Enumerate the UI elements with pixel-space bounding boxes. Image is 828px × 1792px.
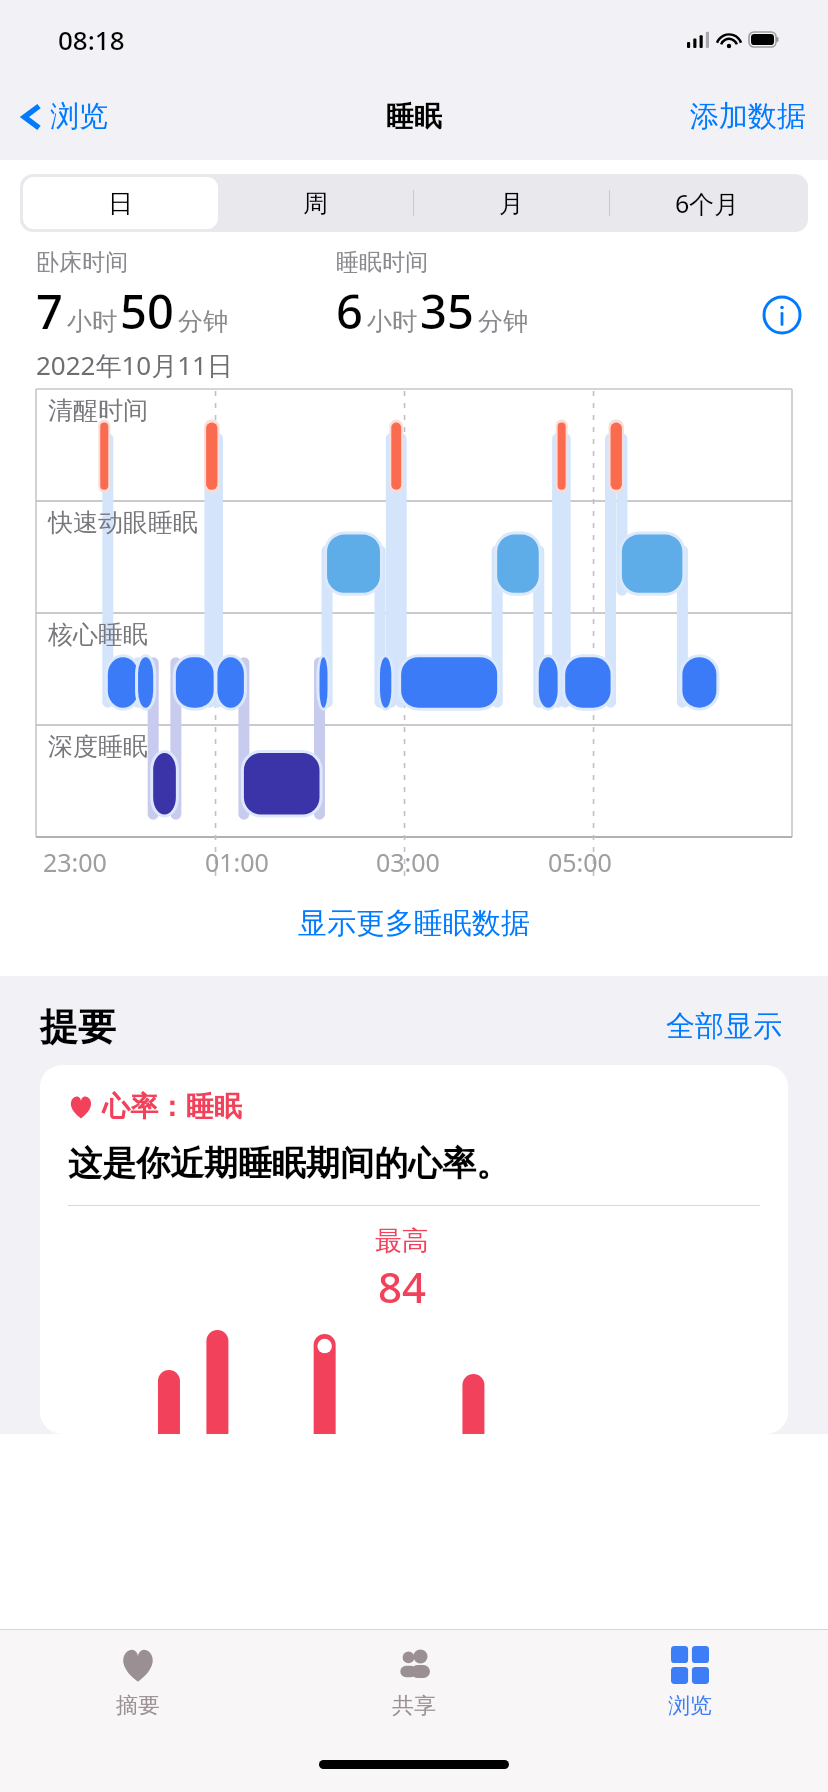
- staticText: 7: [36, 279, 63, 343]
- staticText: 睡眠时间: [336, 248, 428, 277]
- staticText: 月: [499, 188, 524, 219]
- button[interactable]: 显示更多睡眠数据: [0, 889, 828, 958]
- staticText: 6: [336, 279, 363, 343]
- button[interactable]: 月: [413, 177, 609, 229]
- staticText: 23:00: [43, 845, 107, 879]
- button[interactable]: 共享: [276, 1630, 552, 1748]
- staticText: 05:00: [548, 845, 612, 879]
- button[interactable]: 浏览: [0, 90, 118, 143]
- staticText: 浏览: [668, 1692, 712, 1720]
- staticText: 这是你近期睡眠期间的心率。: [68, 1142, 510, 1185]
- button[interactable]: 全部显示: [660, 1002, 788, 1051]
- staticText: 摘要: [116, 1692, 160, 1720]
- staticText: 周: [303, 188, 328, 219]
- staticText: 2022年10月11日: [36, 347, 233, 383]
- staticText: 清醒时间: [48, 395, 148, 426]
- staticText: 核心睡眠: [48, 619, 148, 650]
- staticText: 01:00: [205, 845, 269, 879]
- staticText: 日: [108, 188, 133, 219]
- staticText: 35: [420, 279, 474, 343]
- staticText: 84: [378, 1258, 427, 1315]
- staticText: 心率：睡眠: [102, 1089, 242, 1124]
- button[interactable]: 日: [23, 177, 218, 229]
- button[interactable]: 周: [218, 177, 413, 229]
- staticText: 08:18: [58, 22, 125, 57]
- staticText: 小时: [67, 306, 117, 337]
- staticText: 快速动眼睡眠: [48, 507, 198, 538]
- staticText: 共享: [392, 1692, 436, 1720]
- staticText: 深度睡眠: [48, 731, 148, 762]
- staticText: 小时: [367, 306, 417, 337]
- button[interactable]: 6个月: [609, 177, 805, 229]
- button[interactable]: 摘要: [0, 1630, 276, 1748]
- staticText: 全部显示: [666, 1008, 782, 1045]
- staticText: 最高: [375, 1224, 429, 1258]
- button[interactable]: 心率：睡眠: [40, 1065, 788, 1434]
- button[interactable]: 信息: [760, 293, 804, 337]
- staticText: 50: [120, 279, 174, 343]
- staticText: 6个月: [675, 186, 740, 220]
- staticText: 分钟: [178, 306, 228, 337]
- staticText: 显示更多睡眠数据: [298, 905, 530, 942]
- staticText: 卧床时间: [36, 248, 128, 277]
- staticText: 03:00: [376, 845, 440, 879]
- staticText: 分钟: [478, 306, 528, 337]
- staticText: 睡眠: [386, 99, 442, 134]
- button[interactable]: 添加数据: [678, 90, 828, 143]
- button[interactable]: 浏览: [552, 1630, 828, 1748]
- staticText: 浏览: [50, 98, 108, 135]
- staticText: 添加数据: [690, 98, 806, 135]
- staticText: 提要: [40, 1003, 116, 1051]
